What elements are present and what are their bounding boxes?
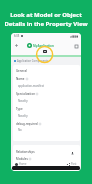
staticText: Look at Model or Object <box>10 11 82 19</box>
staticText: Home <box>19 162 27 166</box>
staticText: application-manifest <box>18 84 44 88</box>
staticText: 6:05 <box>14 34 20 38</box>
staticText: Specialization <box>16 92 35 96</box>
staticText: Application Components <box>17 59 49 63</box>
button[interactable]: General <box>13 65 80 141</box>
staticText: No <box>18 128 22 132</box>
staticText: Novelty <box>18 114 28 118</box>
staticText: Novelty <box>18 99 28 103</box>
staticText: Type <box>16 107 23 111</box>
staticText: General <box>16 69 27 73</box>
staticText: debug-required <box>16 122 38 126</box>
button[interactable]: Add <box>14 43 19 48</box>
staticText: Details in the Property View <box>4 20 88 28</box>
staticText: Post <box>71 162 77 166</box>
button[interactable]: Relationships <box>13 145 80 171</box>
staticText: Relationships <box>16 150 35 154</box>
button[interactable]: Voice input <box>68 149 77 158</box>
staticText: MyApplication <box>33 44 54 48</box>
staticText: Modules <box>16 157 28 161</box>
staticText: Name <box>16 77 25 81</box>
button[interactable]: Device <box>74 44 78 48</box>
